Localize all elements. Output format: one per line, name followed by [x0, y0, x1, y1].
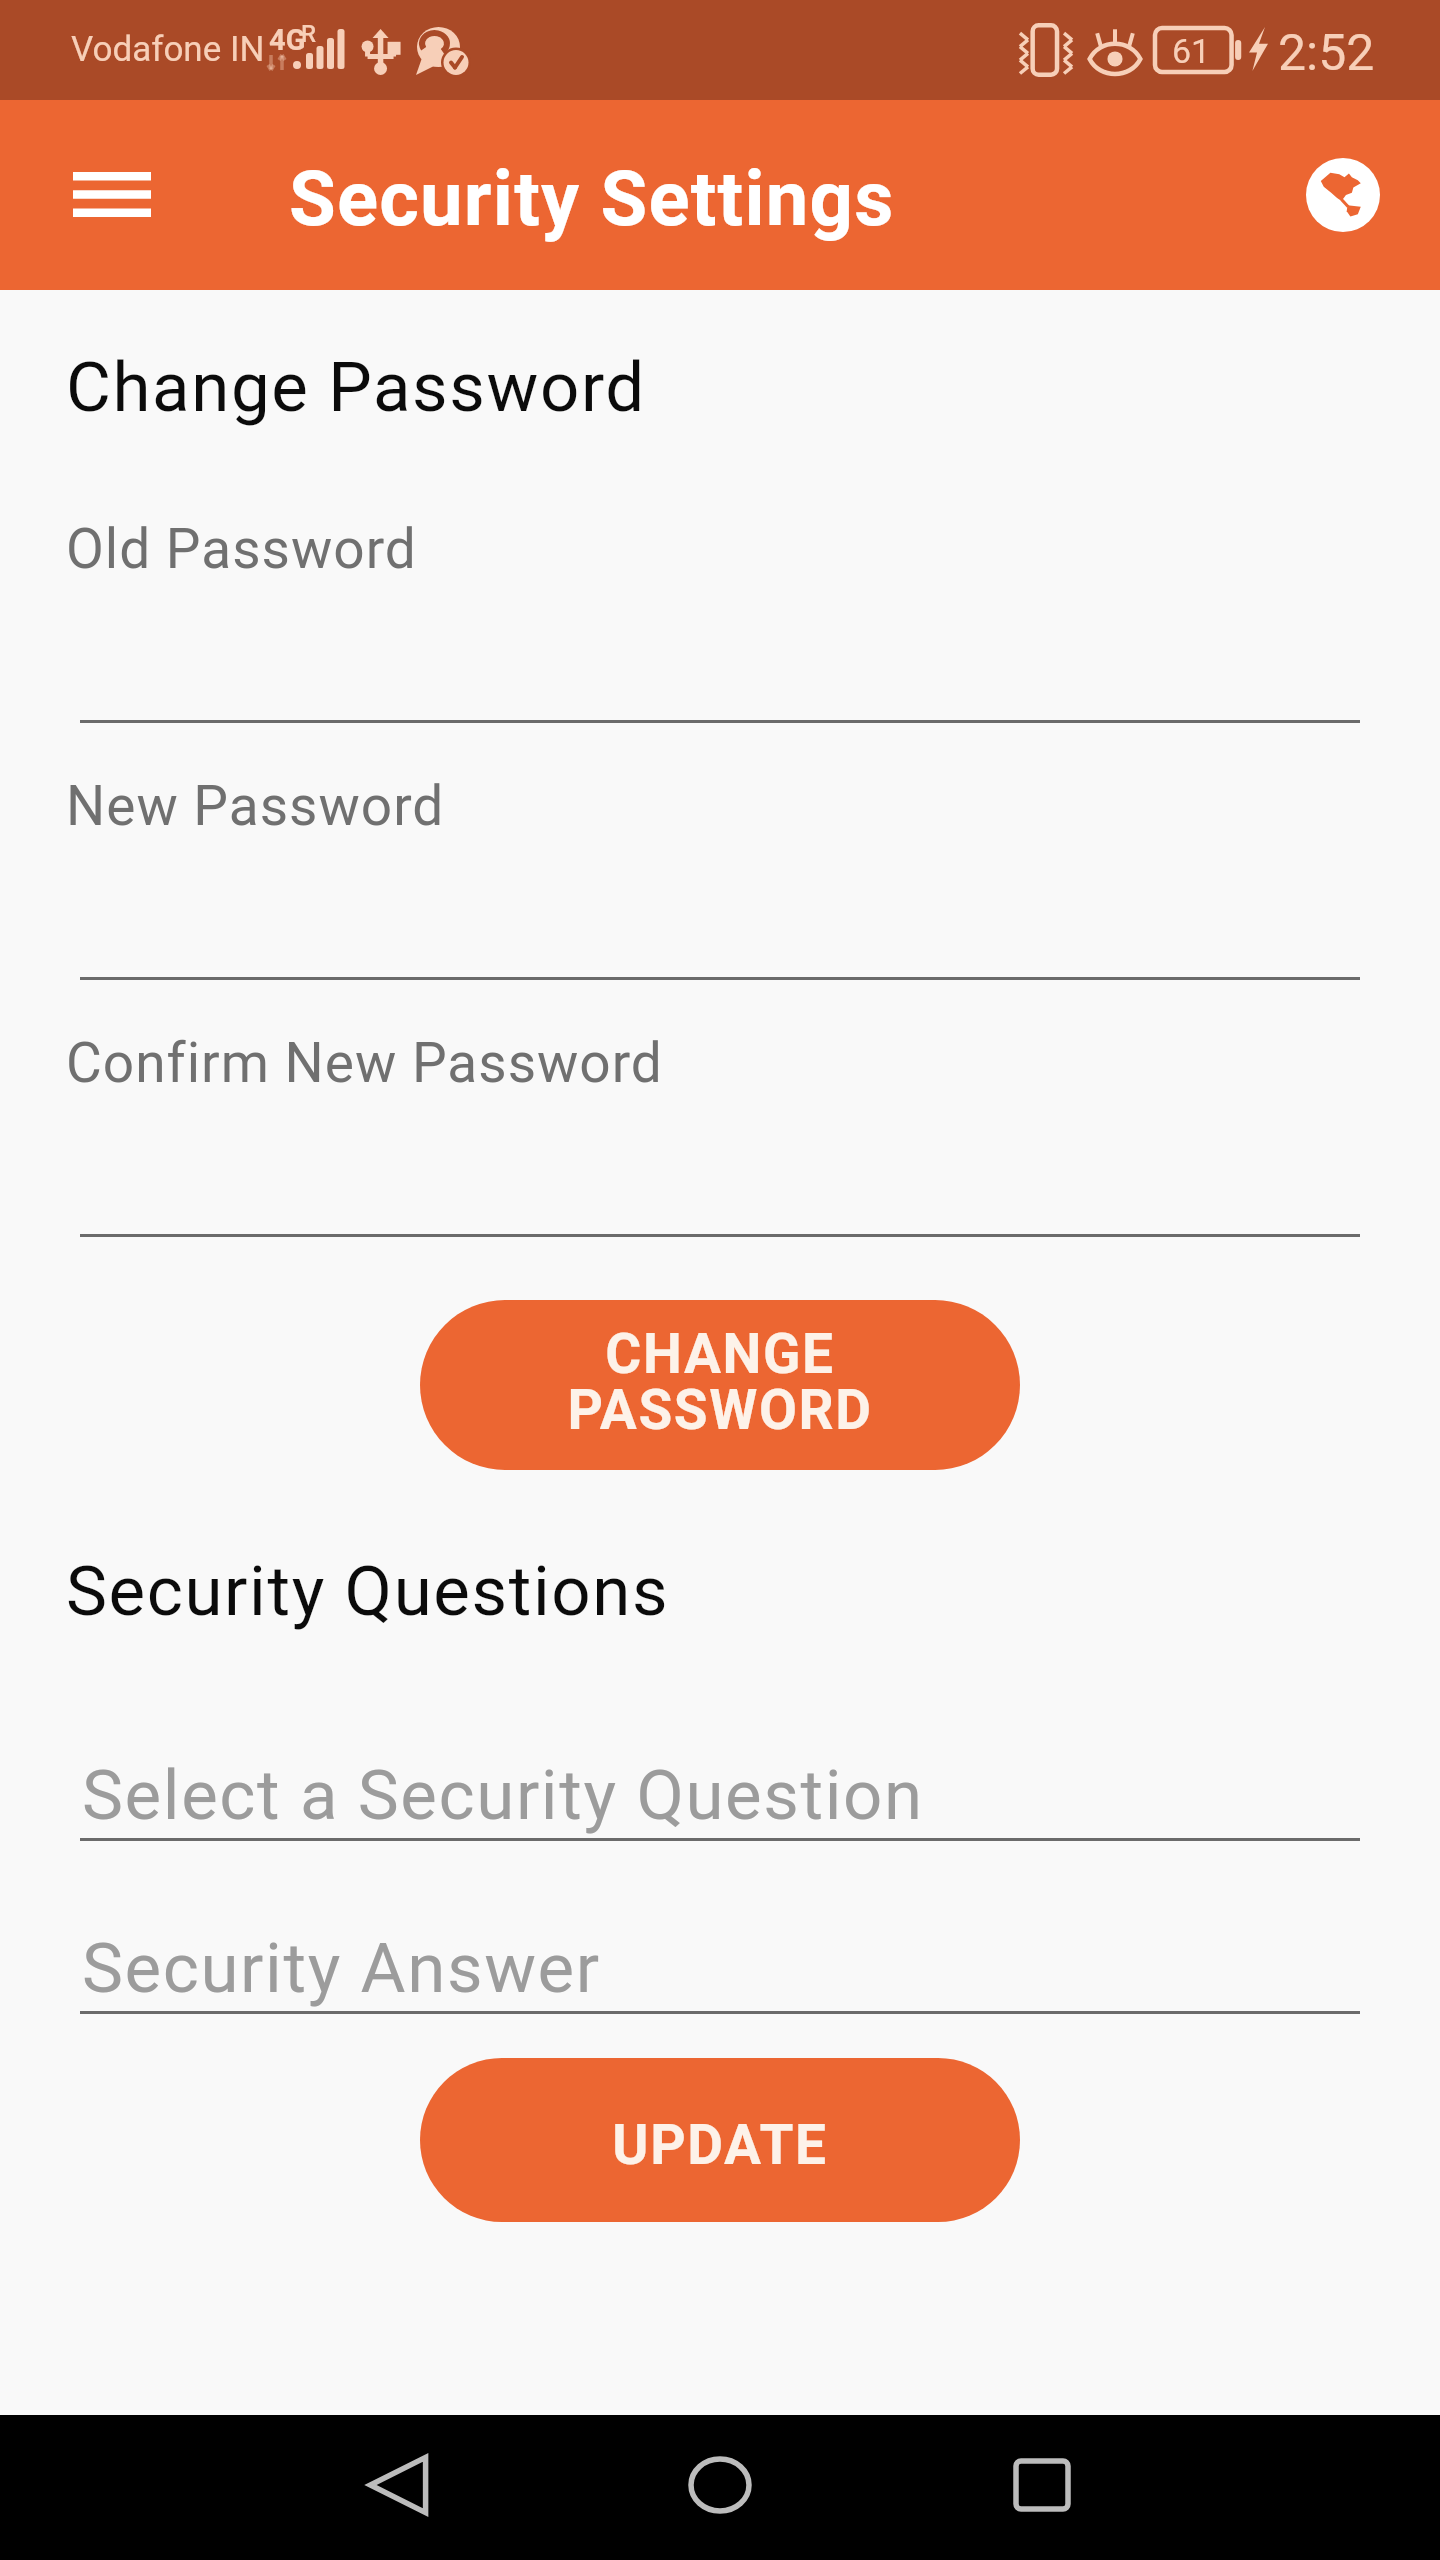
staticText: Vodafone IN — [71, 29, 265, 70]
staticText: R — [301, 20, 316, 48]
staticText: 4G — [269, 23, 306, 57]
button[interactable] — [80, 1920, 1360, 2014]
button[interactable]: Home — [655, 2420, 785, 2550]
staticText: Security Answer — [82, 1928, 601, 2009]
button[interactable] — [80, 511, 1360, 723]
button[interactable] — [80, 768, 1360, 980]
staticText: Old Password — [66, 517, 417, 581]
staticText: Security Questions — [66, 1551, 670, 1632]
staticText: Select a Security Question — [82, 1755, 924, 1836]
staticText: Security Settings — [289, 154, 895, 243]
button[interactable]: Change language — [1293, 145, 1393, 245]
staticText: 2:52 — [1278, 24, 1375, 83]
staticText: Confirm New Password — [66, 1031, 663, 1095]
staticText: CHANGE PASSWORD — [567, 1322, 873, 1443]
button[interactable]: Open navigation drawer — [57, 139, 167, 249]
button[interactable] — [80, 1747, 1360, 1841]
button[interactable]: UPDATE — [420, 2058, 1020, 2222]
button[interactable] — [80, 1025, 1360, 1237]
button[interactable]: Recent apps — [977, 2420, 1107, 2550]
staticText: UPDATE — [612, 2113, 828, 2177]
staticText: Change Password — [66, 347, 646, 428]
staticText: 61 — [1172, 31, 1211, 71]
staticText: New Password — [66, 774, 445, 838]
button[interactable]: Back — [333, 2420, 463, 2550]
button[interactable]: CHANGE PASSWORD — [420, 1300, 1020, 1470]
